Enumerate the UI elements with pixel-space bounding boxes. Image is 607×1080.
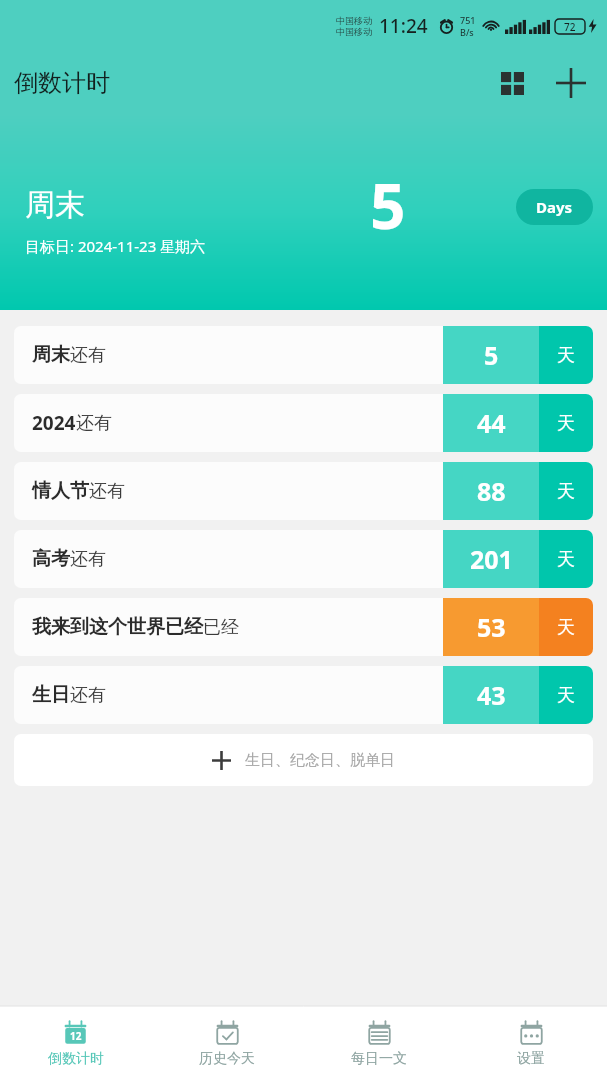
staticText: 53 bbox=[477, 610, 506, 644]
staticText: 还有 bbox=[70, 684, 106, 707]
button[interactable]: 12 bbox=[0, 1006, 151, 1080]
staticText: 44 bbox=[477, 406, 506, 440]
button[interactable]: 每日一文 bbox=[303, 1006, 455, 1080]
staticText: 43 bbox=[477, 678, 506, 712]
staticText: Days bbox=[536, 197, 573, 217]
staticText: 还有 bbox=[70, 548, 106, 571]
staticText: 倒数计时 bbox=[14, 68, 110, 98]
button[interactable]: 情人节 bbox=[14, 462, 593, 520]
staticText: 我来到这个世界已经 bbox=[32, 615, 203, 639]
staticText: 倒数计时 bbox=[48, 1050, 104, 1068]
button[interactable]: 我来到这个世界已经 bbox=[14, 598, 593, 656]
button[interactable]: 周末 bbox=[14, 326, 593, 384]
staticText: 历史今天 bbox=[199, 1050, 255, 1068]
staticText: 72 bbox=[564, 20, 576, 34]
button[interactable]: 生日、纪念日、脱单日 bbox=[14, 734, 593, 786]
staticText: B/s bbox=[460, 26, 474, 38]
staticText: 天 bbox=[557, 684, 575, 707]
staticText: 天 bbox=[557, 616, 575, 639]
staticText: 还有 bbox=[70, 344, 106, 367]
button[interactable]: 生日 bbox=[14, 666, 593, 724]
staticText: 情人节 bbox=[32, 479, 89, 503]
button[interactable]: 2024 bbox=[14, 394, 593, 452]
staticText: 高考 bbox=[32, 547, 70, 571]
staticText: 5 bbox=[484, 338, 499, 372]
staticText: 周末 bbox=[32, 343, 70, 367]
staticText: 天 bbox=[557, 344, 575, 367]
button[interactable]: Grid view bbox=[489, 60, 535, 106]
staticText: 还有 bbox=[89, 480, 125, 503]
staticText: 中国移动 bbox=[336, 15, 372, 26]
staticText: 11:24 bbox=[379, 13, 428, 39]
staticText: 751 bbox=[460, 14, 476, 26]
staticText: 天 bbox=[557, 548, 575, 571]
button[interactable]: 设置 bbox=[455, 1006, 607, 1080]
staticText: 88 bbox=[477, 474, 506, 508]
staticText: 周末 bbox=[25, 186, 85, 224]
button[interactable]: Days bbox=[516, 189, 593, 225]
staticText: 201 bbox=[470, 542, 513, 576]
staticText: 生日 bbox=[32, 683, 70, 707]
staticText: 天 bbox=[557, 412, 575, 435]
button[interactable]: Add countdown bbox=[547, 59, 595, 107]
staticText: 5 bbox=[370, 163, 406, 247]
staticText: 每日一文 bbox=[351, 1050, 407, 1068]
staticText: 还有 bbox=[76, 412, 112, 435]
staticText: 12 bbox=[70, 1029, 82, 1043]
staticText: 生日、纪念日、脱单日 bbox=[245, 751, 395, 770]
staticText: 设置 bbox=[517, 1050, 545, 1068]
button[interactable]: 高考 bbox=[14, 530, 593, 588]
staticText: 天 bbox=[557, 480, 575, 503]
staticText: 2024 bbox=[32, 410, 76, 436]
button[interactable]: 历史今天 bbox=[151, 1006, 303, 1080]
staticText: 已经 bbox=[203, 616, 239, 639]
button[interactable]: 周末 bbox=[0, 114, 607, 310]
staticText: 中国移动 bbox=[336, 26, 372, 37]
staticText: 目标日: 2024-11-23 星期六 bbox=[25, 236, 206, 256]
